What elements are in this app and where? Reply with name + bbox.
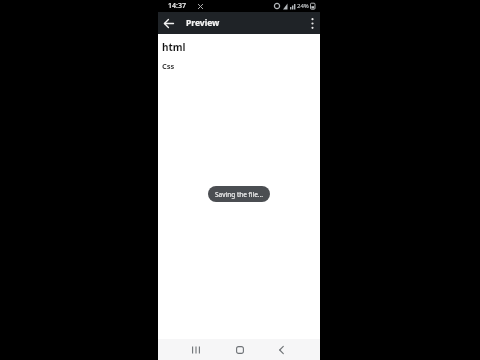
button[interactable] xyxy=(158,12,180,34)
staticText: html xyxy=(162,40,186,54)
button[interactable] xyxy=(188,339,204,360)
staticText: Preview xyxy=(186,17,220,29)
button[interactable] xyxy=(304,12,320,34)
staticText: Css xyxy=(162,61,175,71)
button[interactable] xyxy=(232,339,248,360)
staticText: Saving the file... xyxy=(215,190,264,199)
staticText: 24% xyxy=(297,2,309,10)
button[interactable] xyxy=(273,339,289,360)
staticText: 14:37 xyxy=(168,1,186,11)
